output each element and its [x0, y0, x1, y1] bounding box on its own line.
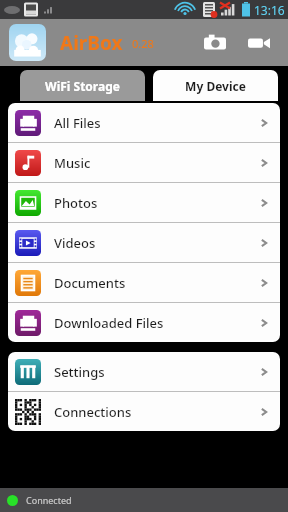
staticText: AirBox	[60, 30, 123, 56]
button[interactable]: Connections	[8, 392, 280, 431]
staticText: Settings	[54, 363, 105, 381]
staticText: Connected	[26, 494, 72, 506]
button[interactable]: Photos	[8, 183, 280, 222]
button[interactable]: Downloaded Files	[8, 303, 280, 342]
staticText: WiFi Storage	[45, 78, 120, 94]
staticText: Downloaded Files	[54, 314, 164, 332]
button[interactable]: Record video	[242, 26, 276, 60]
button[interactable]: Settings	[8, 352, 280, 391]
staticText: Connections	[54, 403, 132, 421]
staticText: Documents	[54, 274, 126, 292]
staticText: My Device	[185, 78, 246, 94]
button[interactable]: Documents	[8, 263, 280, 302]
button[interactable]: Videos	[8, 223, 280, 262]
button[interactable]: My Device	[153, 70, 278, 101]
button[interactable]: Take photo	[198, 26, 232, 60]
button[interactable]: WiFi Storage	[20, 70, 145, 101]
staticText: Videos	[54, 234, 96, 252]
staticText: 13:16	[254, 2, 285, 18]
staticText: All Files	[54, 114, 101, 132]
button[interactable]: Music	[8, 143, 280, 182]
button[interactable]: All Files	[8, 103, 280, 142]
staticText: Music	[54, 154, 91, 172]
staticText: Photos	[54, 194, 98, 212]
staticText: 0.28	[132, 36, 154, 51]
